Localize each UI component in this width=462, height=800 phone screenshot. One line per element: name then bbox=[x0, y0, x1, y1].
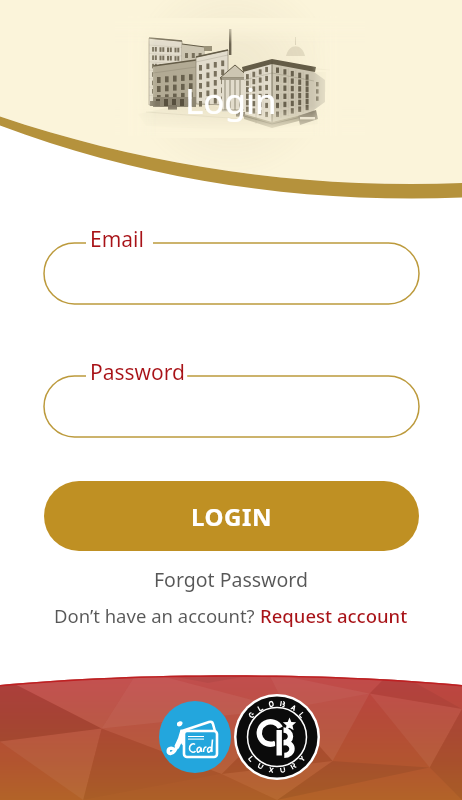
staticText: Email bbox=[90, 225, 144, 254]
staticText: Don’t have an account? bbox=[54, 603, 255, 628]
staticText: LOGIN bbox=[191, 500, 273, 533]
staticText: Forgot Password bbox=[154, 566, 308, 593]
button[interactable]: LOGIN bbox=[44, 481, 419, 551]
button[interactable]: Email bbox=[44, 243, 419, 304]
staticText: Password bbox=[90, 358, 185, 387]
button[interactable]: iCard bbox=[159, 701, 231, 773]
staticText: Request account bbox=[260, 603, 408, 628]
button[interactable]: Forgot Password bbox=[140, 563, 322, 596]
button[interactable]: Password bbox=[44, 376, 419, 437]
button[interactable]: Request account bbox=[255, 601, 408, 630]
staticText: Login bbox=[185, 77, 277, 125]
button[interactable]: Coldwell Banker Global Luxury bbox=[234, 694, 320, 780]
